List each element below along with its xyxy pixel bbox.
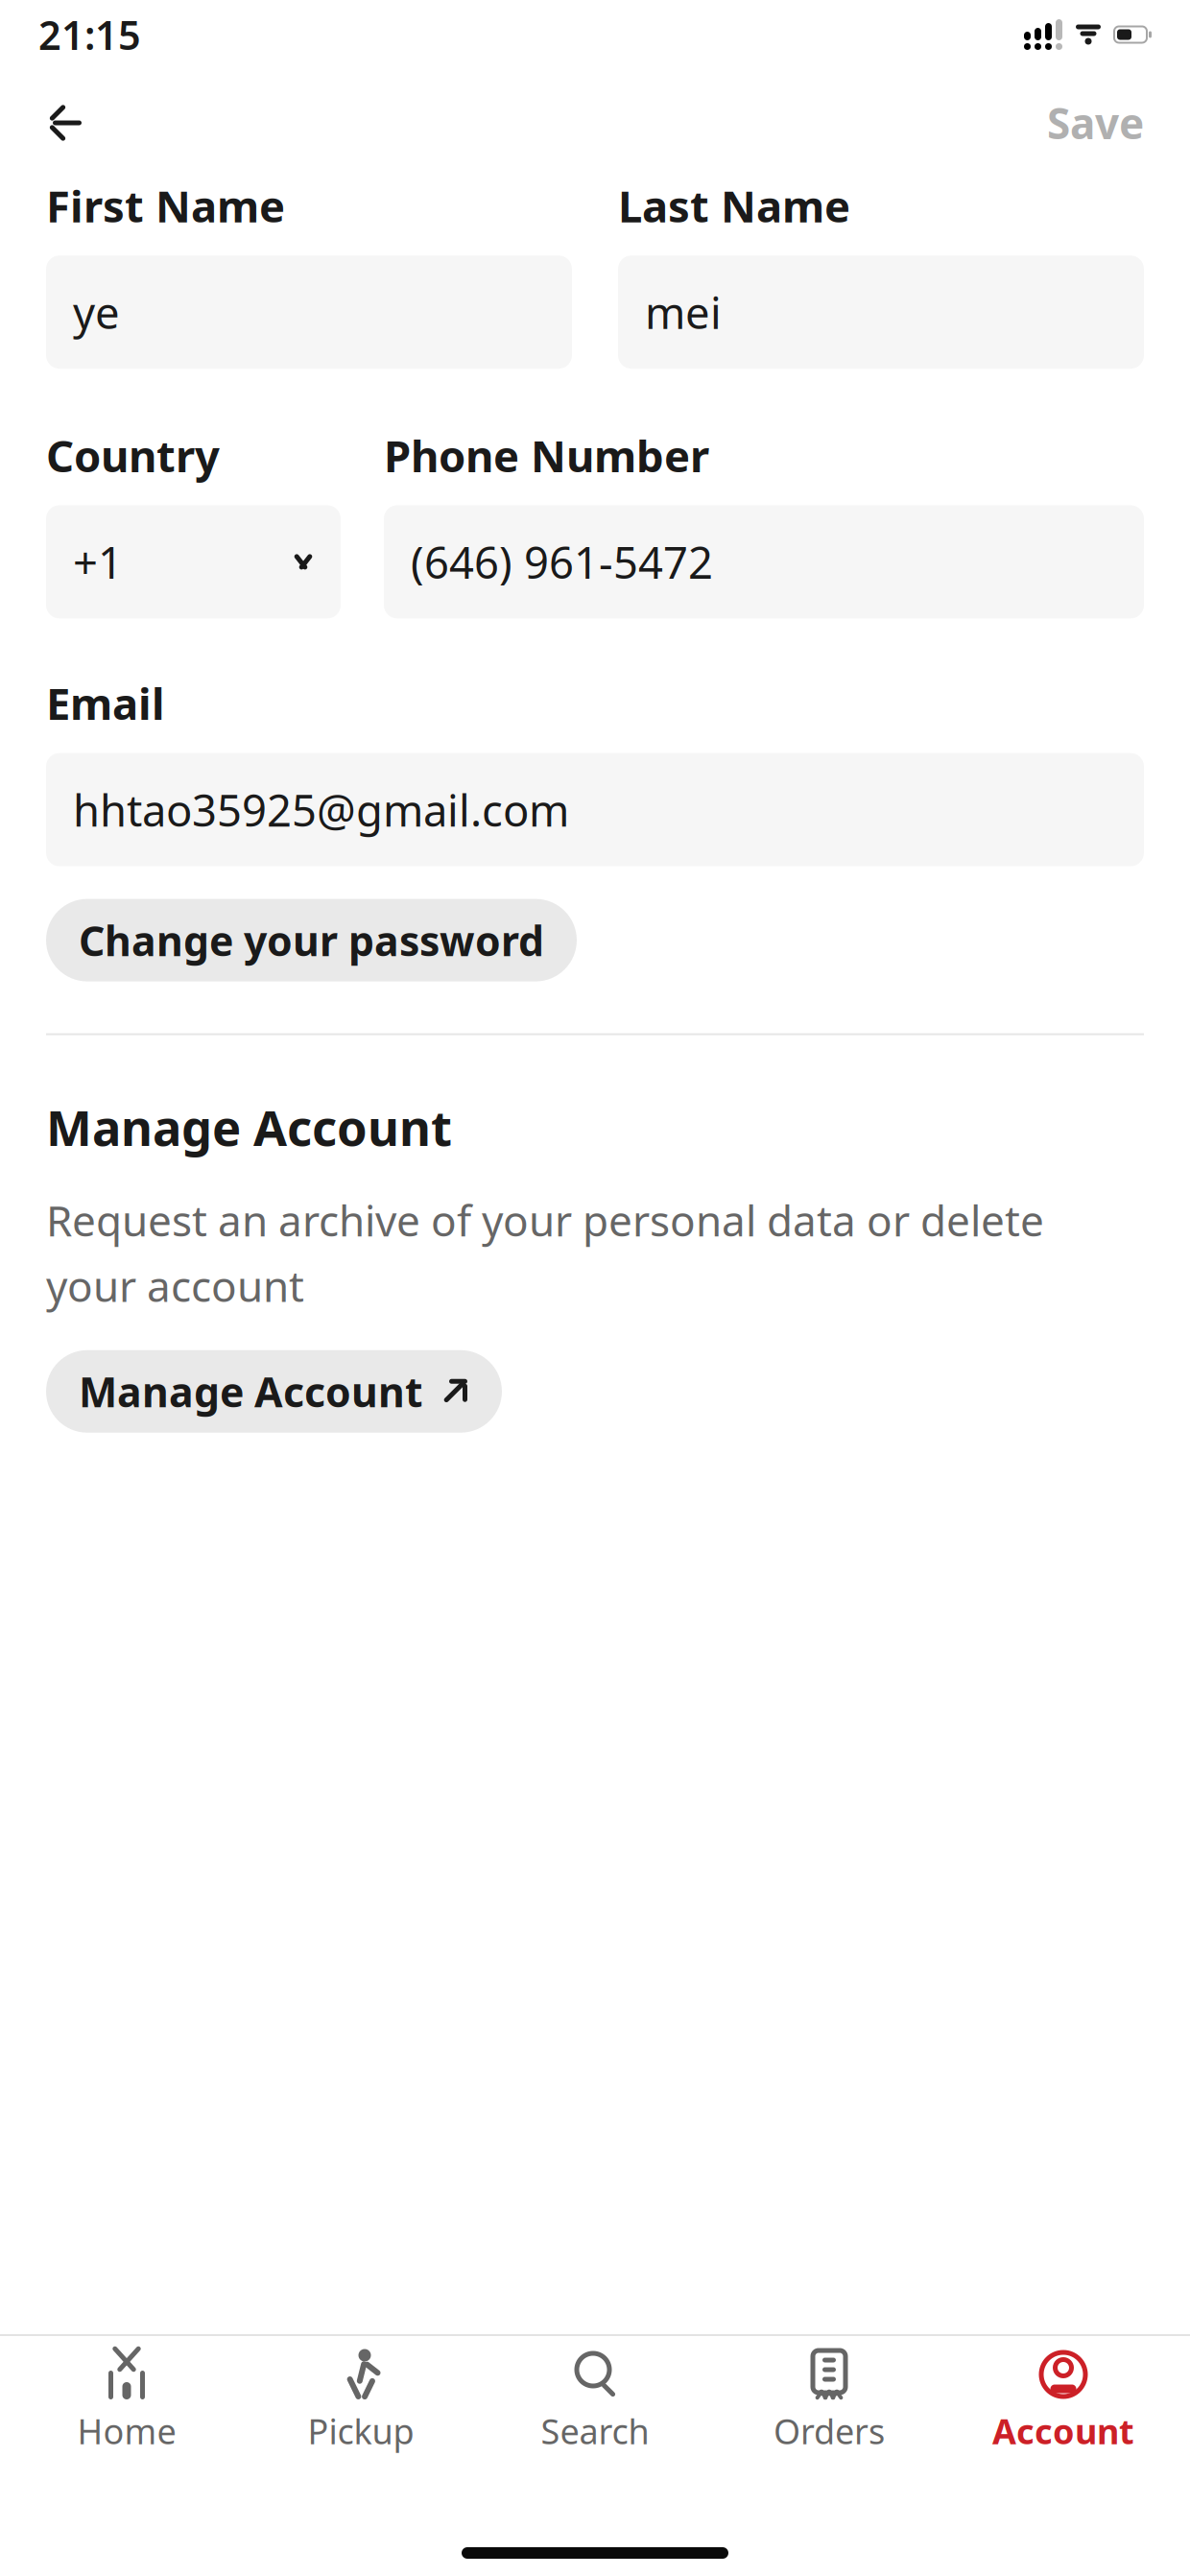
staticText: Home (77, 2408, 176, 2454)
button[interactable]: Back (40, 92, 94, 154)
staticText: 21:15 (38, 8, 141, 61)
staticText: (646) 961-5472 (411, 533, 713, 591)
staticText: Pickup (308, 2408, 414, 2454)
button[interactable]: Save (1041, 81, 1150, 164)
button[interactable]: Country code, plus 1 (46, 505, 341, 618)
staticText: Last Name (618, 177, 850, 234)
staticText: Phone Number (384, 426, 709, 484)
staticText: Orders (773, 2408, 885, 2454)
staticText: Manage Account (79, 1364, 423, 1419)
staticText: ye (73, 283, 120, 341)
staticText: +1 (73, 533, 123, 591)
button[interactable]: Orders (712, 2336, 946, 2464)
staticText: Search (541, 2408, 649, 2454)
staticText: First Name (46, 177, 285, 234)
button[interactable]: Account (946, 2336, 1180, 2464)
button[interactable]: Pickup (244, 2336, 478, 2464)
staticText: Change your password (79, 913, 544, 967)
staticText: Save (1047, 95, 1144, 151)
staticText: hhtao35925@gmail.com (73, 781, 569, 839)
staticText: Request an archive of your personal data… (46, 1192, 1044, 1314)
button[interactable]: Home (10, 2336, 244, 2464)
staticText: Account (992, 2408, 1134, 2454)
button[interactable]: Search (478, 2336, 712, 2464)
staticText: mei (645, 283, 722, 341)
staticText: Manage Account (46, 1095, 452, 1159)
button[interactable]: Change your password (46, 899, 577, 981)
staticText: Email (46, 674, 165, 732)
staticText: Country (46, 426, 220, 484)
button[interactable]: Manage Account (46, 1350, 502, 1433)
